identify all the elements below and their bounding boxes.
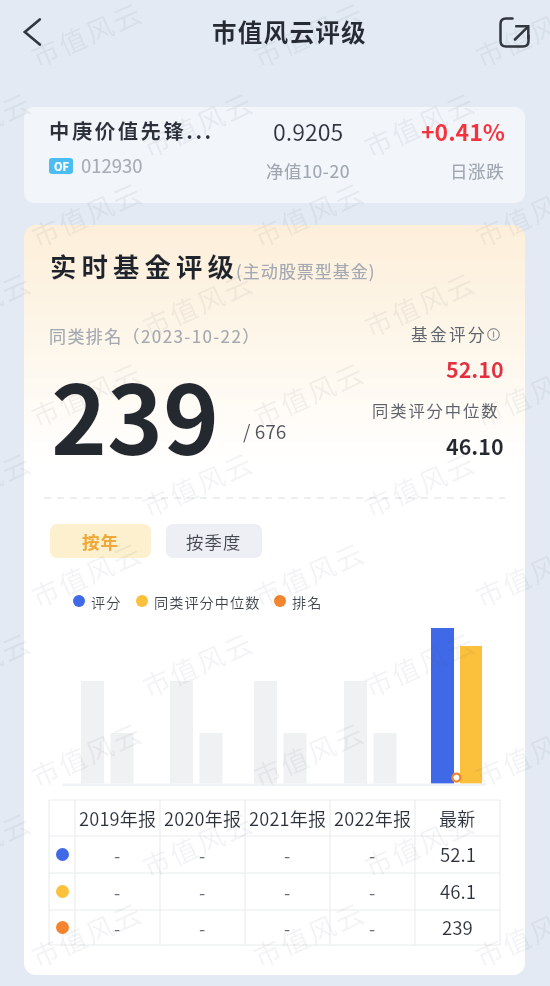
- staticText: 239: [51, 345, 220, 483]
- staticText: 最新: [439, 805, 476, 831]
- staticText: -: [369, 842, 376, 868]
- staticText: 2022年报: [334, 805, 412, 831]
- button[interactable]: 中庚价值先锋...: [24, 107, 525, 203]
- staticText: 净值10-20: [266, 158, 351, 183]
- staticText: 46.1: [440, 878, 476, 905]
- staticText: 按季度: [186, 529, 242, 554]
- staticText: -: [199, 842, 206, 868]
- staticText: -: [284, 879, 291, 905]
- staticText: 市值风云评级: [212, 13, 367, 49]
- staticText: 实时基金评级: [50, 246, 239, 284]
- staticText: OF: [54, 158, 69, 174]
- staticText: 2021年报: [249, 805, 327, 831]
- staticText: 评分: [91, 592, 122, 610]
- staticText: 46.10: [446, 430, 504, 461]
- staticText: +0.41%: [421, 114, 505, 147]
- staticText: 中庚价值先锋...: [49, 115, 214, 145]
- staticText: (主动股票型基金): [236, 258, 376, 283]
- staticText: -: [114, 915, 121, 941]
- staticText: 基金评分: [411, 322, 487, 346]
- button[interactable]: 按年: [50, 524, 151, 558]
- staticText: -: [369, 915, 376, 941]
- staticText: 2020年报: [164, 805, 242, 831]
- staticText: / 676: [243, 417, 287, 445]
- staticText: -: [284, 842, 291, 868]
- staticText: -: [114, 879, 121, 905]
- staticText: -: [199, 915, 206, 941]
- button[interactable]: Share: [489, 7, 539, 57]
- staticText: 同类评分中位数: [372, 398, 500, 422]
- staticText: -: [369, 879, 376, 905]
- staticText: 012930: [81, 152, 143, 179]
- staticText: 0.9205: [273, 114, 344, 147]
- staticText: 同类评分中位数: [154, 592, 261, 610]
- staticText: -: [284, 915, 291, 941]
- staticText: 排名: [292, 592, 323, 610]
- staticText: 按年: [82, 529, 119, 554]
- staticText: 52.1: [440, 841, 476, 868]
- button[interactable]: Back: [9, 9, 55, 55]
- staticText: -: [199, 879, 206, 905]
- staticText: 52.10: [446, 353, 504, 384]
- staticText: 同类排名（2023-10-22）: [49, 323, 261, 348]
- staticText: -: [114, 842, 121, 868]
- staticText: 2019年报: [79, 805, 157, 831]
- staticText: 239: [442, 914, 473, 941]
- button[interactable]: 按季度: [166, 524, 262, 558]
- staticText: 日涨跌: [450, 158, 505, 183]
